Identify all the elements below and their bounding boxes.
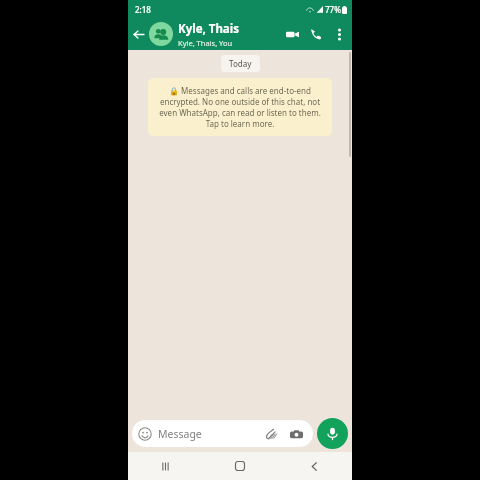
staticText: Today	[229, 58, 252, 69]
staticText: Kyle, Thais, You	[178, 38, 233, 48]
button[interactable]: Message	[132, 420, 313, 447]
staticText: Message	[158, 427, 262, 441]
staticText: 77%	[325, 4, 341, 15]
button[interactable]: More options	[328, 23, 350, 45]
button[interactable]: Record voice message	[317, 418, 348, 449]
button[interactable]: Kyle, Thais	[178, 21, 280, 48]
button[interactable]: Home	[202, 452, 277, 480]
button[interactable]: Back	[128, 24, 148, 44]
button[interactable]: 🔒 Messages and calls are end-to-end encr…	[148, 78, 332, 136]
button[interactable]: Voice call	[304, 22, 328, 46]
button[interactable]: Attach	[262, 425, 280, 443]
button[interactable]: Back	[277, 452, 352, 480]
button[interactable]: Camera	[287, 425, 305, 443]
button[interactable]: Group photo	[149, 22, 173, 46]
staticText: 🔒 Messages and calls are end-to-end encr…	[157, 85, 323, 129]
button[interactable]: Today	[221, 55, 260, 72]
button[interactable]: Recents	[128, 452, 202, 480]
button[interactable]: Video call	[280, 22, 304, 46]
staticText: Kyle, Thais	[178, 21, 239, 37]
staticText: 2:18	[135, 4, 151, 15]
